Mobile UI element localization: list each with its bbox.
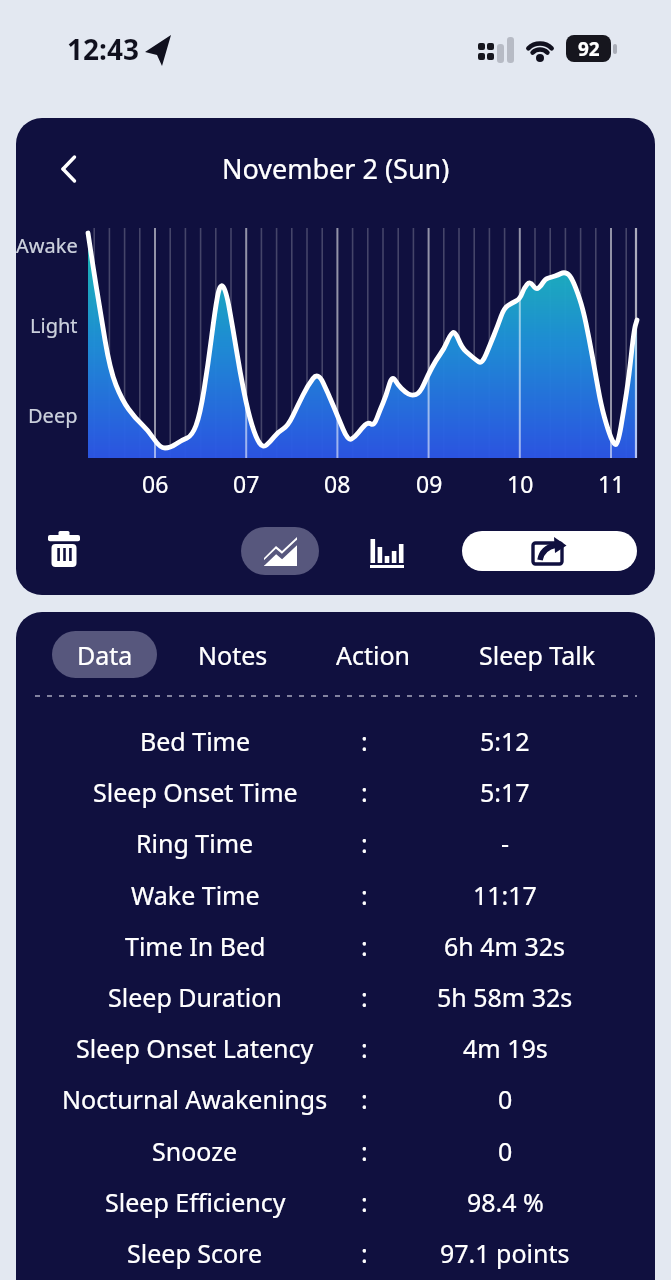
staticText: 12:43: [67, 30, 139, 64]
staticText: Notes: [198, 638, 268, 672]
staticText: Sleep Score: [127, 1236, 263, 1270]
staticText: Deep: [28, 402, 78, 429]
staticText: Sleep Onset Latency: [76, 1031, 314, 1065]
staticText: :: [361, 980, 368, 1014]
staticText: 5:17: [480, 775, 530, 809]
staticText: 5:12: [480, 724, 530, 758]
staticText: :: [361, 1236, 368, 1270]
staticText: 11: [598, 468, 625, 496]
staticText: Data: [77, 638, 133, 672]
staticText: 5h 58m 32s: [437, 980, 573, 1014]
button[interactable]: [42, 526, 86, 572]
staticText: 09: [416, 468, 443, 496]
staticText: 07: [233, 468, 260, 496]
staticText: Bed Time: [140, 724, 251, 758]
staticText: Ring Time: [136, 826, 254, 860]
button[interactable]: [366, 530, 408, 572]
button[interactable]: Sleep Talk: [457, 631, 617, 678]
staticText: Time In Bed: [125, 929, 266, 963]
button[interactable]: Action: [313, 631, 433, 678]
staticText: Action: [336, 638, 411, 672]
staticText: Awake: [16, 232, 78, 259]
staticText: Sleep Talk: [479, 638, 595, 672]
staticText: 11:17: [473, 878, 537, 912]
staticText: Wake Time: [131, 878, 260, 912]
button[interactable]: [241, 527, 319, 575]
staticText: 10: [507, 468, 534, 496]
staticText: 0: [498, 1134, 513, 1168]
staticText: :: [361, 826, 368, 860]
staticText: -: [501, 826, 510, 860]
staticText: 06: [142, 468, 169, 496]
staticText: :: [361, 878, 368, 912]
staticText: :: [361, 1185, 368, 1219]
staticText: Nocturnal Awakenings: [62, 1082, 328, 1116]
staticText: 98.4 %: [467, 1185, 544, 1219]
staticText: 08: [324, 468, 351, 496]
staticText: 0: [498, 1082, 513, 1116]
button[interactable]: [50, 150, 88, 188]
button[interactable]: [462, 531, 637, 571]
staticText: :: [361, 775, 368, 809]
button[interactable]: Notes: [173, 631, 293, 678]
staticText: Light: [30, 312, 78, 339]
staticText: :: [361, 929, 368, 963]
staticText: November 2 (Sun): [222, 150, 450, 187]
button[interactable]: Data: [52, 631, 157, 678]
staticText: 6h 4m 32s: [444, 929, 566, 963]
staticText: 92: [578, 36, 600, 62]
staticText: :: [361, 1031, 368, 1065]
staticText: Sleep Onset Time: [93, 775, 298, 809]
staticText: Sleep Efficiency: [105, 1185, 286, 1219]
staticText: :: [361, 1134, 368, 1168]
staticText: 4m 19s: [463, 1031, 548, 1065]
staticText: Snooze: [152, 1134, 238, 1168]
staticText: 97.1 points: [440, 1236, 570, 1270]
staticText: :: [361, 1082, 368, 1116]
staticText: Sleep Duration: [108, 980, 282, 1014]
staticText: :: [361, 724, 368, 758]
